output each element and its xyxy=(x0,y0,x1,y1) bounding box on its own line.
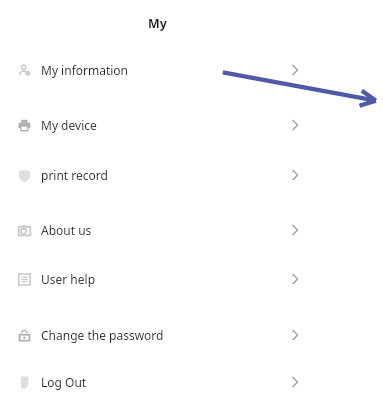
button[interactable]: User help xyxy=(0,257,383,301)
staticText: My device xyxy=(41,117,97,133)
button[interactable]: print record xyxy=(0,153,383,197)
staticText: Change the password xyxy=(41,327,164,343)
button[interactable]: My information xyxy=(0,48,383,92)
staticText: print record xyxy=(41,167,108,183)
button[interactable]: Change the password xyxy=(0,313,383,357)
staticText: About us xyxy=(41,222,92,238)
button[interactable]: Log Out xyxy=(0,360,383,404)
staticText: My xyxy=(148,15,167,32)
staticText: Log Out xyxy=(41,374,87,390)
button[interactable]: My device xyxy=(0,103,383,147)
button[interactable]: About us xyxy=(0,208,383,252)
staticText: My information xyxy=(41,62,129,78)
staticText: User help xyxy=(41,271,96,287)
